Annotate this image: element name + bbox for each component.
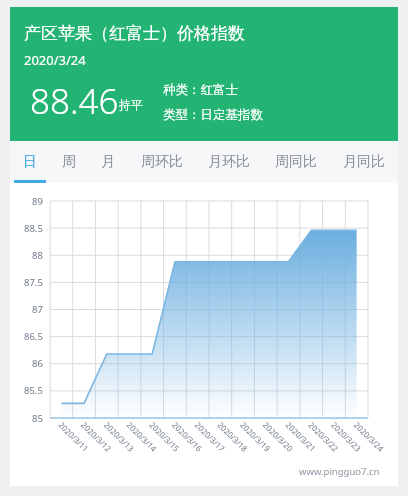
button[interactable]: 周 <box>49 141 88 183</box>
staticText: 周 <box>62 153 76 171</box>
staticText: 月环比 <box>208 153 250 171</box>
staticText: 类型：日定基指数 <box>163 107 263 123</box>
staticText: 日 <box>23 153 37 171</box>
staticText: 88.46 <box>30 77 119 125</box>
button[interactable]: 周环比 <box>128 141 195 183</box>
button[interactable]: 月同比 <box>329 141 398 183</box>
button[interactable]: 日 <box>10 141 49 183</box>
staticText: 周同比 <box>275 153 317 171</box>
staticText: 月 <box>101 153 115 171</box>
staticText: 月同比 <box>343 153 385 171</box>
staticText: 种类：红富士 <box>163 82 238 98</box>
button[interactable]: 周同比 <box>262 141 329 183</box>
staticText: 持平 <box>119 97 143 112</box>
staticText: 产区苹果（红富士）价格指数 <box>24 23 245 44</box>
staticText: 2020/3/24 <box>24 51 86 69</box>
button[interactable]: 月 <box>88 141 128 183</box>
button[interactable]: 月环比 <box>195 141 262 183</box>
staticText: 周环比 <box>141 153 183 171</box>
